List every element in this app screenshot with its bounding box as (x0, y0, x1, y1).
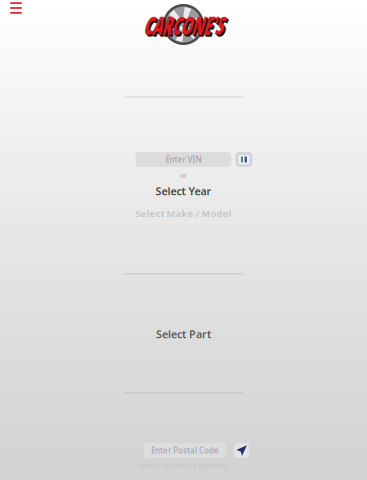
staticText: Select Year (155, 184, 211, 198)
staticText: CARCONE'S (153, 10, 297, 44)
button[interactable]: Use current location (233, 442, 249, 458)
button[interactable]: Select Make / Model (135, 207, 231, 220)
staticText: CARCONE'S (152, 9, 296, 43)
button[interactable]: Enter Postal Code (144, 443, 226, 458)
button[interactable]: Select Part (156, 327, 211, 341)
staticText: Search by location (optional) (138, 461, 228, 470)
staticText: Select Make / Model (135, 207, 231, 220)
button[interactable]: Enter VIN (135, 152, 231, 167)
staticText: Enter Postal Code (151, 445, 219, 456)
staticText: Enter VIN (165, 154, 201, 165)
button[interactable]: Select Year (155, 184, 211, 198)
button[interactable]: Menu (3, 0, 29, 19)
staticText: CARCONE'S (151, 8, 295, 42)
button[interactable]: Scan VIN barcode (235, 152, 252, 167)
staticText: or (180, 171, 187, 180)
staticText: Select Part (156, 327, 211, 341)
